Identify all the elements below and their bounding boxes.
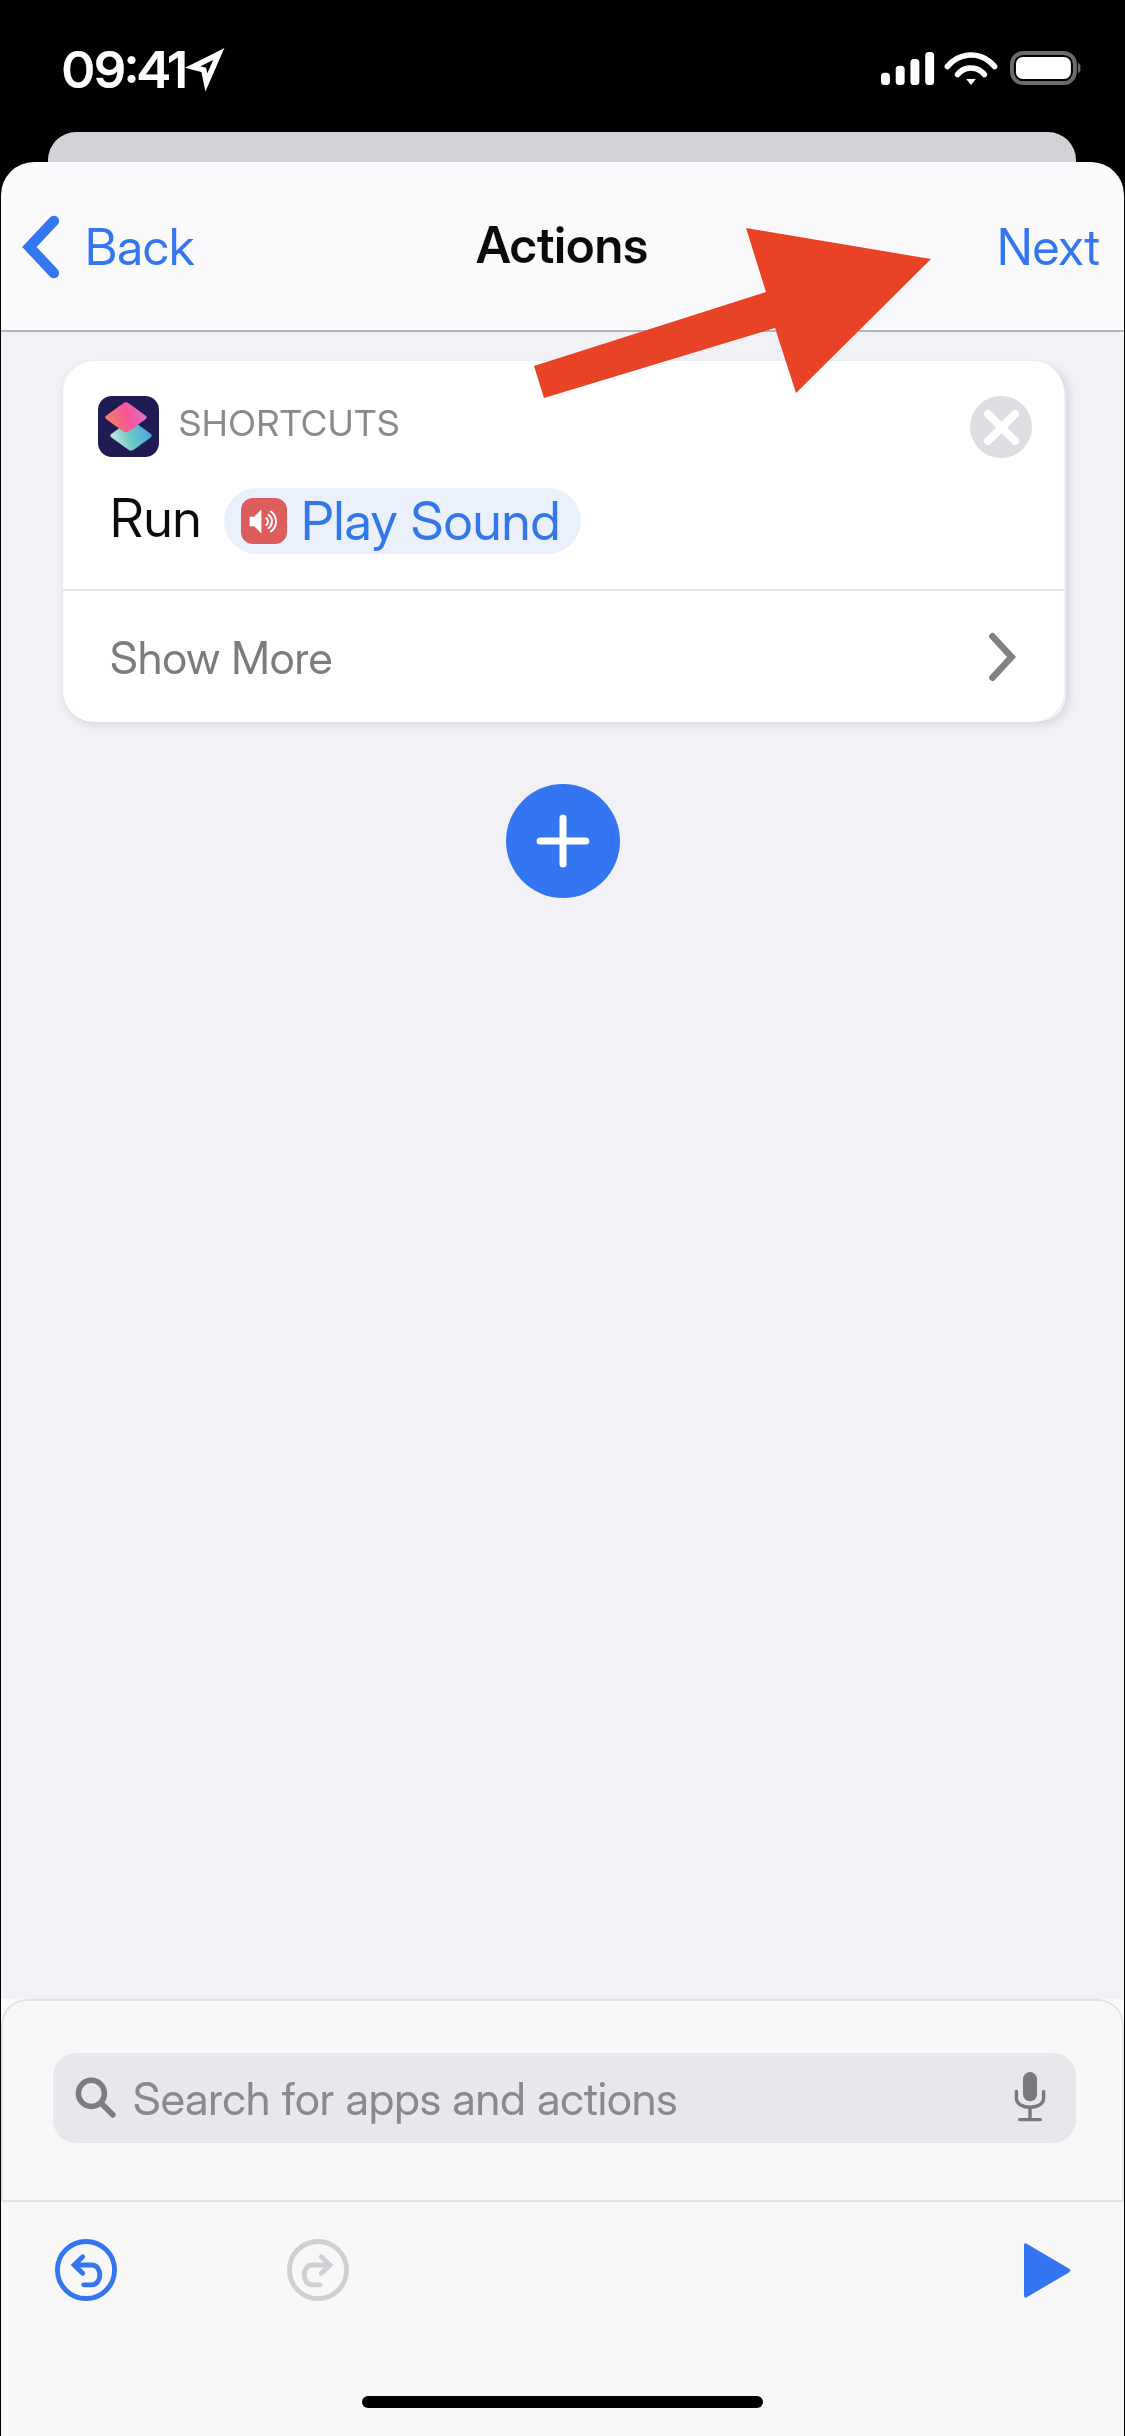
button[interactable]: Undo xyxy=(53,2237,119,2303)
button[interactable]: Add action xyxy=(506,784,620,898)
button[interactable]: Remove action xyxy=(970,396,1032,458)
staticText: Next xyxy=(997,217,1100,277)
staticText: SHORTCUTS xyxy=(179,401,401,445)
staticText: Show More xyxy=(110,630,333,684)
button[interactable]: Search for apps and actions xyxy=(53,2053,1076,2143)
staticText: Run xyxy=(110,486,202,550)
button[interactable]: Voice search xyxy=(992,2060,1068,2136)
staticText: Search for apps and actions xyxy=(133,2071,678,2125)
button[interactable]: Redo xyxy=(285,2237,351,2303)
button[interactable]: Back xyxy=(1,192,209,302)
button[interactable]: Next xyxy=(973,192,1124,302)
staticText: Back xyxy=(85,217,195,277)
button[interactable]: Run shortcut xyxy=(1007,2230,1087,2310)
staticText: Actions xyxy=(476,215,649,275)
button[interactable]: Show More xyxy=(63,591,1064,722)
staticText: Play Sound xyxy=(301,489,561,553)
button[interactable]: SHORTCUTS xyxy=(63,361,1064,722)
staticText: 09:41 xyxy=(62,39,188,101)
button[interactable]: Play Sound xyxy=(224,488,581,554)
